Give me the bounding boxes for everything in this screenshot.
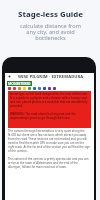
staticText: The camino through Extremadura is very q… [8, 129, 91, 169]
staticText: MONESTERIO [8, 81, 31, 86]
button[interactable]: Category [23, 87, 26, 90]
button[interactable]: Category [53, 87, 56, 90]
button[interactable]: MONESTERIO [7, 81, 32, 86]
button[interactable]: Category [18, 87, 21, 90]
button[interactable]: Category [13, 87, 16, 90]
button[interactable]: Category [8, 87, 11, 90]
button[interactable]: Back [5, 73, 94, 80]
button[interactable]: Category [38, 87, 41, 90]
button[interactable]: Category [33, 87, 36, 90]
button[interactable]: Category [28, 87, 31, 90]
button[interactable]: Category [43, 87, 46, 90]
staticText: A new type of link book designed for the… [10, 92, 89, 120]
button[interactable]: Category [48, 87, 51, 90]
staticText: Stage-less Guide [18, 9, 83, 20]
staticText: WISE PILGRIM · EXTREMADURA [18, 74, 84, 80]
staticText: calculate distance from any city, and av… [20, 22, 81, 42]
other: Back [5, 73, 13, 80]
